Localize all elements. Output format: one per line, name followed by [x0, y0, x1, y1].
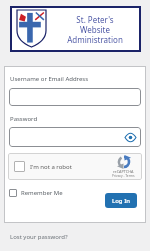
button[interactable]: [9, 127, 141, 147]
staticText: Password: [10, 115, 38, 123]
staticText: Username or Email Address: [10, 75, 89, 83]
staticText: Privacy - Terms: [112, 174, 135, 178]
staticText: Log In: [112, 197, 131, 205]
button[interactable]: [9, 88, 141, 106]
staticText: Remember Me: [21, 189, 63, 197]
button[interactable]: St. Peter's Website Administration: [10, 6, 141, 52]
staticText: I'm not a robot: [30, 163, 72, 171]
button[interactable]: Remember Me: [9, 189, 63, 197]
button[interactable]: I'm not a robot: [8, 153, 142, 180]
staticText: reCAPTCHA: [113, 169, 134, 174]
button[interactable]: Lost your password?: [10, 233, 68, 241]
staticText: St. Peter's Website Administration: [57, 14, 133, 45]
button[interactable]: Log In: [105, 193, 137, 208]
